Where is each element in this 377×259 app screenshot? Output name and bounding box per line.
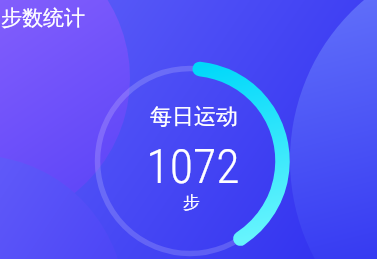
staticText: 步数统计 [1, 5, 85, 31]
staticText: 1072 [146, 138, 240, 194]
staticText: 每日运动 [150, 103, 238, 131]
button[interactable]: 步数统计 [1, 5, 85, 31]
staticText: 步 [183, 192, 200, 213]
